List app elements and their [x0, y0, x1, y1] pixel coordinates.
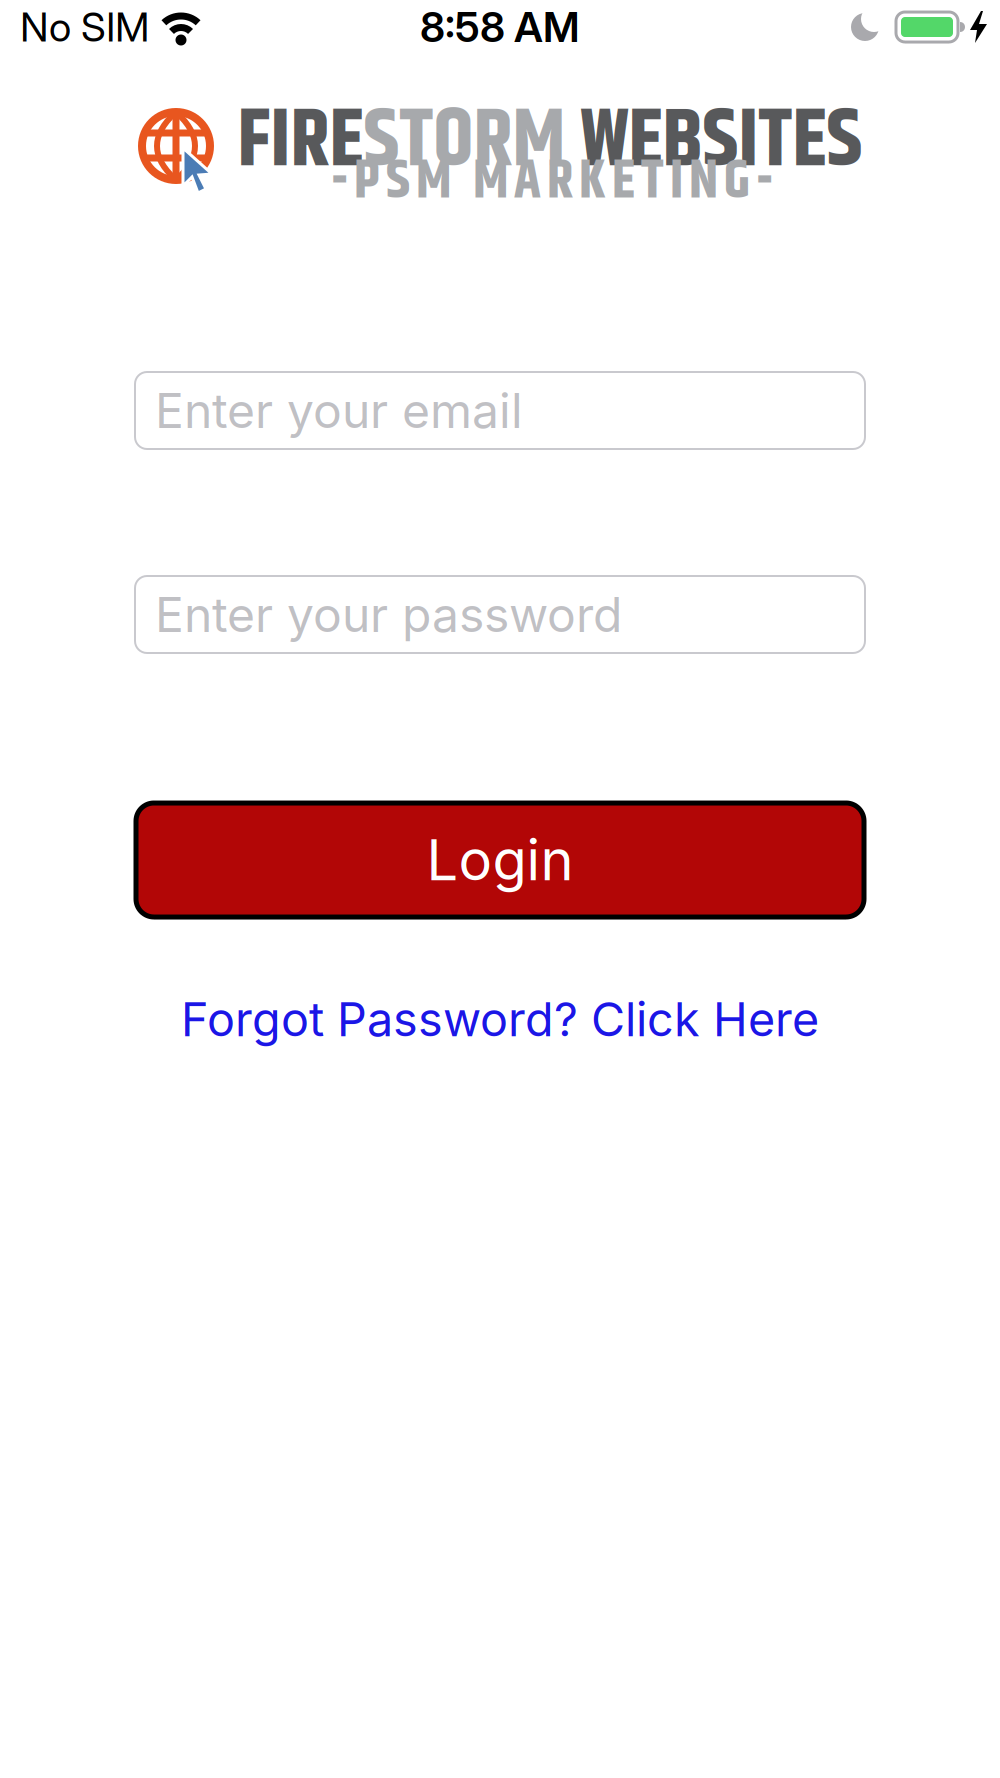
staticText: FIRE: [237, 80, 363, 204]
button[interactable]: Enter your password: [135, 576, 865, 653]
button[interactable]: Forgot Password? Click Here: [181, 991, 819, 1047]
staticText: Forgot Password? Click Here: [181, 991, 819, 1047]
staticText: Login: [426, 826, 573, 894]
staticText: Enter your email: [155, 381, 523, 440]
staticText: STORM: [363, 80, 565, 204]
button[interactable]: Enter your email: [135, 372, 865, 449]
staticText: WEBSITES: [565, 80, 862, 204]
button[interactable]: Login: [136, 803, 864, 917]
staticText: 8:58 AM: [420, 2, 580, 52]
staticText: No SIM: [20, 3, 149, 51]
staticText: -PSM MARKETING-: [331, 140, 773, 224]
staticText: Enter your password: [155, 585, 622, 644]
